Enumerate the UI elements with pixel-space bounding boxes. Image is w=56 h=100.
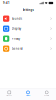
button[interactable]: Privacy [2, 34, 54, 43]
button[interactable]: Display [2, 24, 54, 33]
button[interactable]: Library [0, 88, 19, 100]
button[interactable]: Settings [19, 88, 37, 100]
staticText: Library [6, 94, 12, 96]
staticText: 9:41 [3, 1, 10, 5]
staticText: Display [12, 27, 21, 30]
button[interactable]: General [2, 44, 54, 53]
staticText: Profile [44, 94, 49, 96]
staticText: Sounds [12, 17, 22, 20]
staticText: General [12, 47, 23, 50]
button[interactable]: Profile [37, 88, 56, 100]
staticText: Settings [25, 94, 30, 96]
staticText: Privacy [12, 37, 20, 40]
staticText: Settings [22, 8, 33, 12]
button[interactable]: Sounds [2, 14, 54, 23]
